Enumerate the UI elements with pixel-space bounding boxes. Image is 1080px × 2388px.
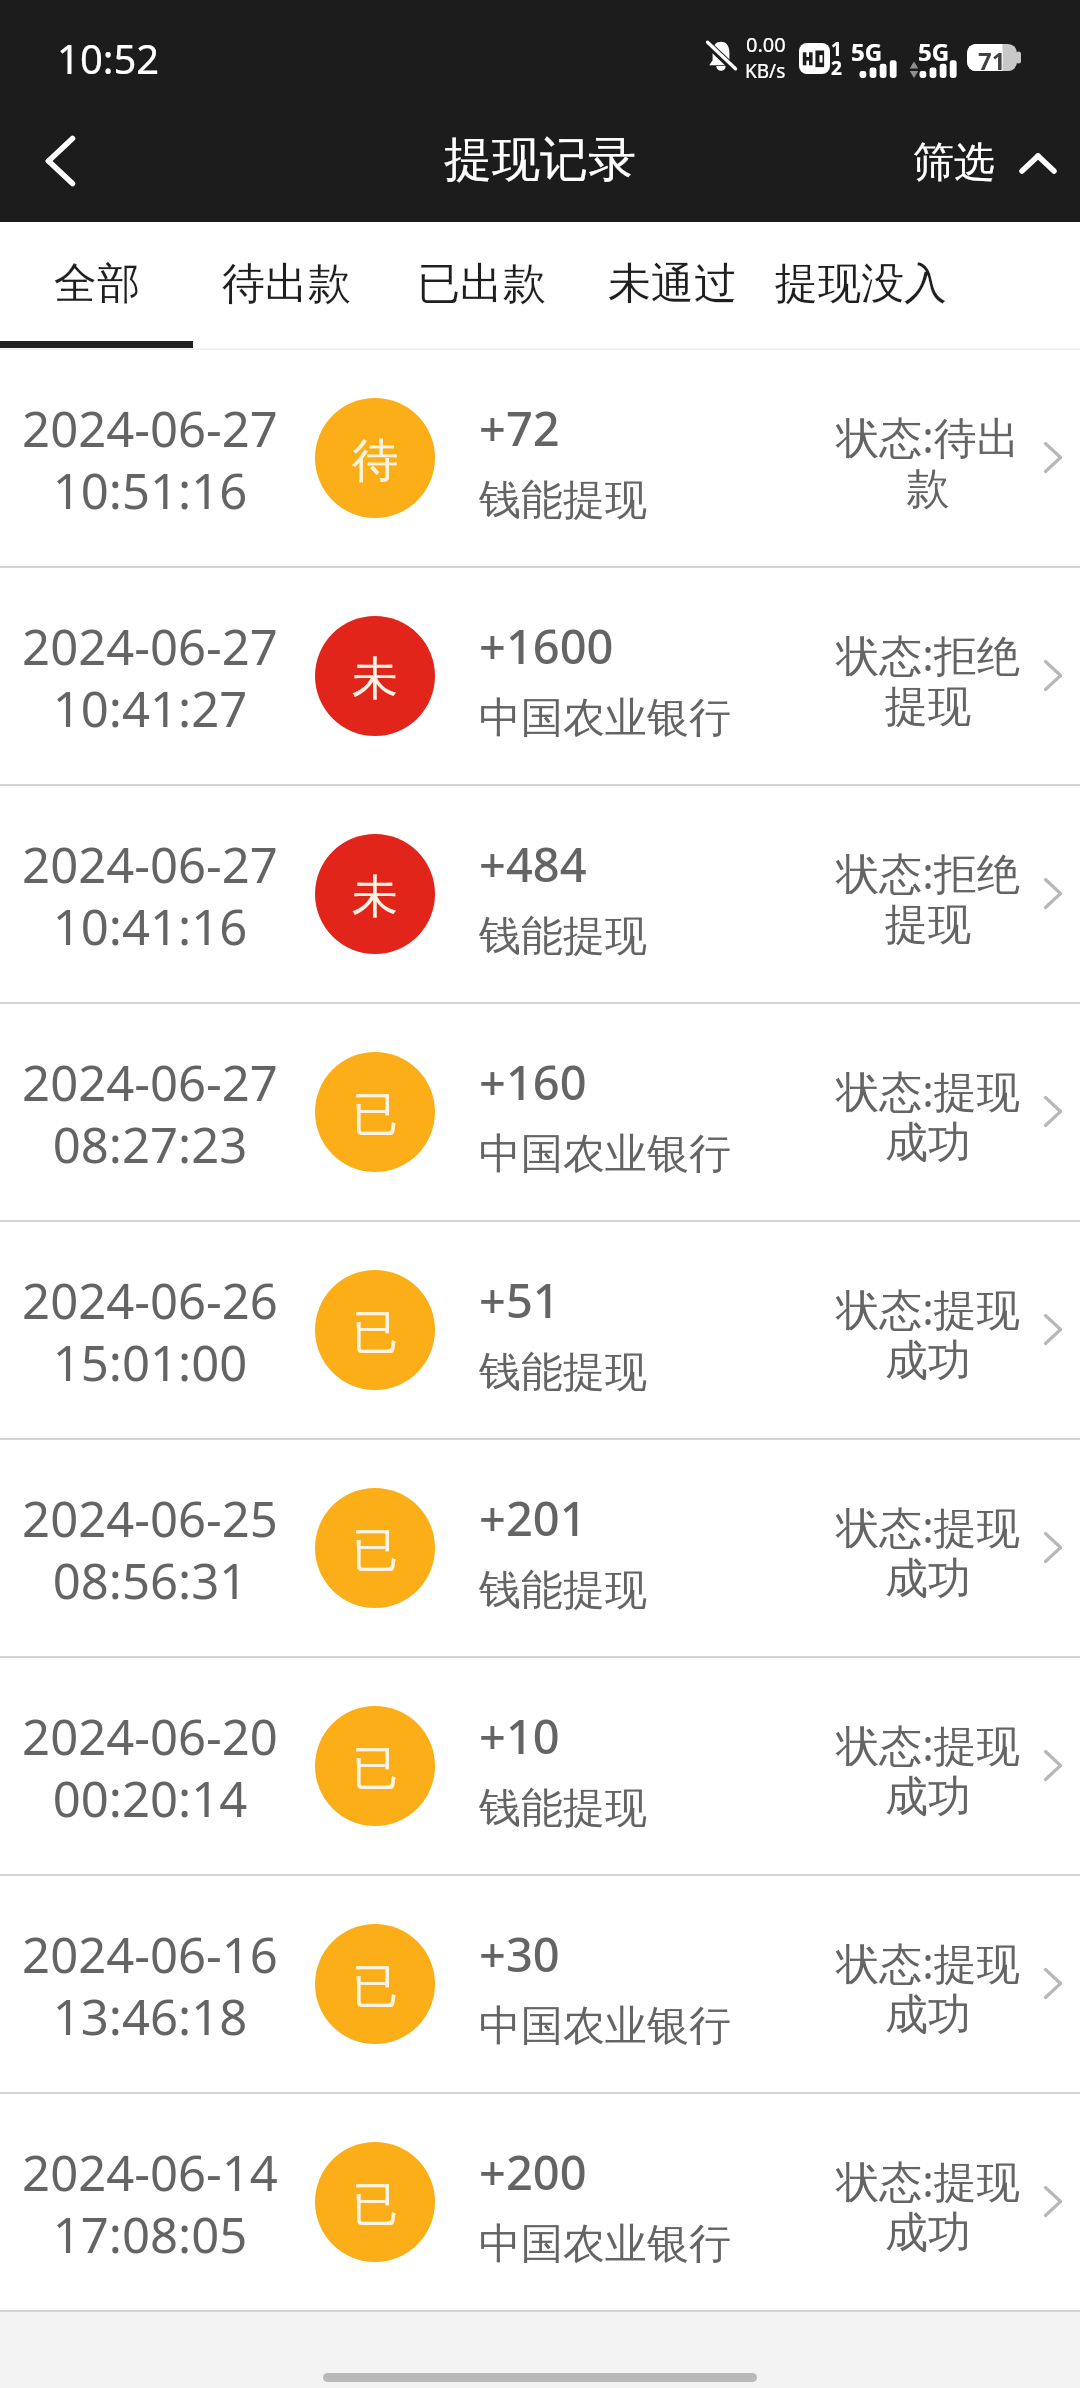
staticText: 钱能提现 (479, 1782, 647, 1835)
staticText: 71 (978, 44, 1006, 71)
staticText: 2024-06-14 17:08:05 (22, 2139, 278, 2267)
staticText: 2024-06-26 15:01:00 (22, 1267, 278, 1395)
staticText: +160 (479, 1050, 587, 1114)
staticText: 2024-06-27 08:27:23 (22, 1049, 278, 1177)
staticText: 钱能提现 (479, 910, 647, 963)
staticText: 2024-06-25 08:56:31 (22, 1485, 278, 1613)
staticText: 已 (352, 2176, 398, 2234)
staticText: +200 (479, 2140, 587, 2204)
button[interactable]: 2024-06-16 13:46:18 (0, 1876, 1080, 2092)
staticText: 5G (918, 35, 950, 68)
staticText: 2024-06-27 10:41:27 (22, 613, 278, 741)
staticText: 中国农业银行 (479, 692, 731, 745)
staticText: 5G (851, 35, 883, 68)
button[interactable]: 全部 (53, 225, 141, 343)
staticText: +201 (479, 1486, 587, 1550)
staticText: 已 (352, 1304, 398, 1362)
staticText: 提现记录 (444, 130, 636, 190)
staticText: 钱能提现 (479, 1564, 647, 1617)
staticText: 待 (352, 432, 398, 490)
staticText: 中国农业银行 (479, 2218, 731, 2271)
button[interactable]: 2024-06-27 10:41:16 (0, 786, 1080, 1002)
staticText: 10:52 (57, 31, 160, 85)
staticText: 已 (352, 1522, 398, 1580)
staticText: 1 2 (831, 36, 842, 80)
staticText: 已出款 (417, 257, 546, 311)
staticText: +72 (479, 396, 560, 460)
staticText: 中国农业银行 (479, 2000, 731, 2053)
staticText: 提现没入 (775, 257, 947, 311)
button[interactable]: 未通过 (606, 225, 738, 343)
button[interactable]: Back (3, 103, 118, 218)
button[interactable]: 筛选 (913, 107, 1080, 219)
staticText: 已 (352, 1958, 398, 2016)
staticText: 已 (352, 1086, 398, 1144)
staticText: 状态:提现成功 (830, 2151, 1026, 2260)
staticText: +1600 (479, 614, 614, 678)
staticText: 全部 (54, 257, 140, 311)
staticText: 状态:提现成功 (830, 1061, 1026, 1170)
button[interactable]: 2024-06-27 10:51:16 (0, 350, 1080, 566)
button[interactable]: 已出款 (415, 225, 547, 343)
button[interactable]: 2024-06-20 00:20:14 (0, 1658, 1080, 1874)
button[interactable]: 2024-06-14 17:08:05 (0, 2094, 1080, 2310)
staticText: +51 (479, 1268, 560, 1332)
staticText: 状态:待出款 (830, 407, 1026, 516)
staticText: +10 (479, 1704, 560, 1768)
staticText: +30 (479, 1922, 560, 1986)
staticText: 状态:提现成功 (830, 1497, 1026, 1606)
staticText: +484 (479, 832, 587, 896)
staticText: 未 (352, 650, 398, 708)
staticText: 筛选 (913, 137, 995, 189)
staticText: 未 (352, 868, 398, 926)
button[interactable]: 提现没入 (773, 225, 949, 343)
staticText: 状态:拒绝提现 (830, 843, 1026, 952)
button[interactable]: 2024-06-26 15:01:00 (0, 1222, 1080, 1438)
staticText: 2024-06-27 10:41:16 (22, 831, 278, 959)
button[interactable]: 2024-06-27 10:41:27 (0, 568, 1080, 784)
button[interactable]: 2024-06-27 08:27:23 (0, 1004, 1080, 1220)
button[interactable]: 待出款 (220, 225, 352, 343)
staticText: 2024-06-27 10:51:16 (22, 395, 278, 523)
staticText: 未通过 (608, 257, 737, 311)
staticText: 2024-06-20 00:20:14 (22, 1703, 278, 1831)
staticText: 已 (352, 1740, 398, 1798)
staticText: 中国农业银行 (479, 1128, 731, 1181)
staticText: 2024-06-16 13:46:18 (22, 1921, 278, 2049)
staticText: 状态:提现成功 (830, 1933, 1026, 2042)
staticText: 0.00 (746, 31, 786, 58)
staticText: 状态:提现成功 (830, 1715, 1026, 1824)
staticText: 待出款 (222, 257, 351, 311)
staticText: 钱能提现 (479, 1346, 647, 1399)
staticText: 状态:提现成功 (830, 1279, 1026, 1388)
button[interactable]: 2024-06-25 08:56:31 (0, 1440, 1080, 1656)
staticText: 状态:拒绝提现 (830, 625, 1026, 734)
staticText: KB/s (745, 58, 786, 84)
staticText: 钱能提现 (479, 474, 647, 527)
